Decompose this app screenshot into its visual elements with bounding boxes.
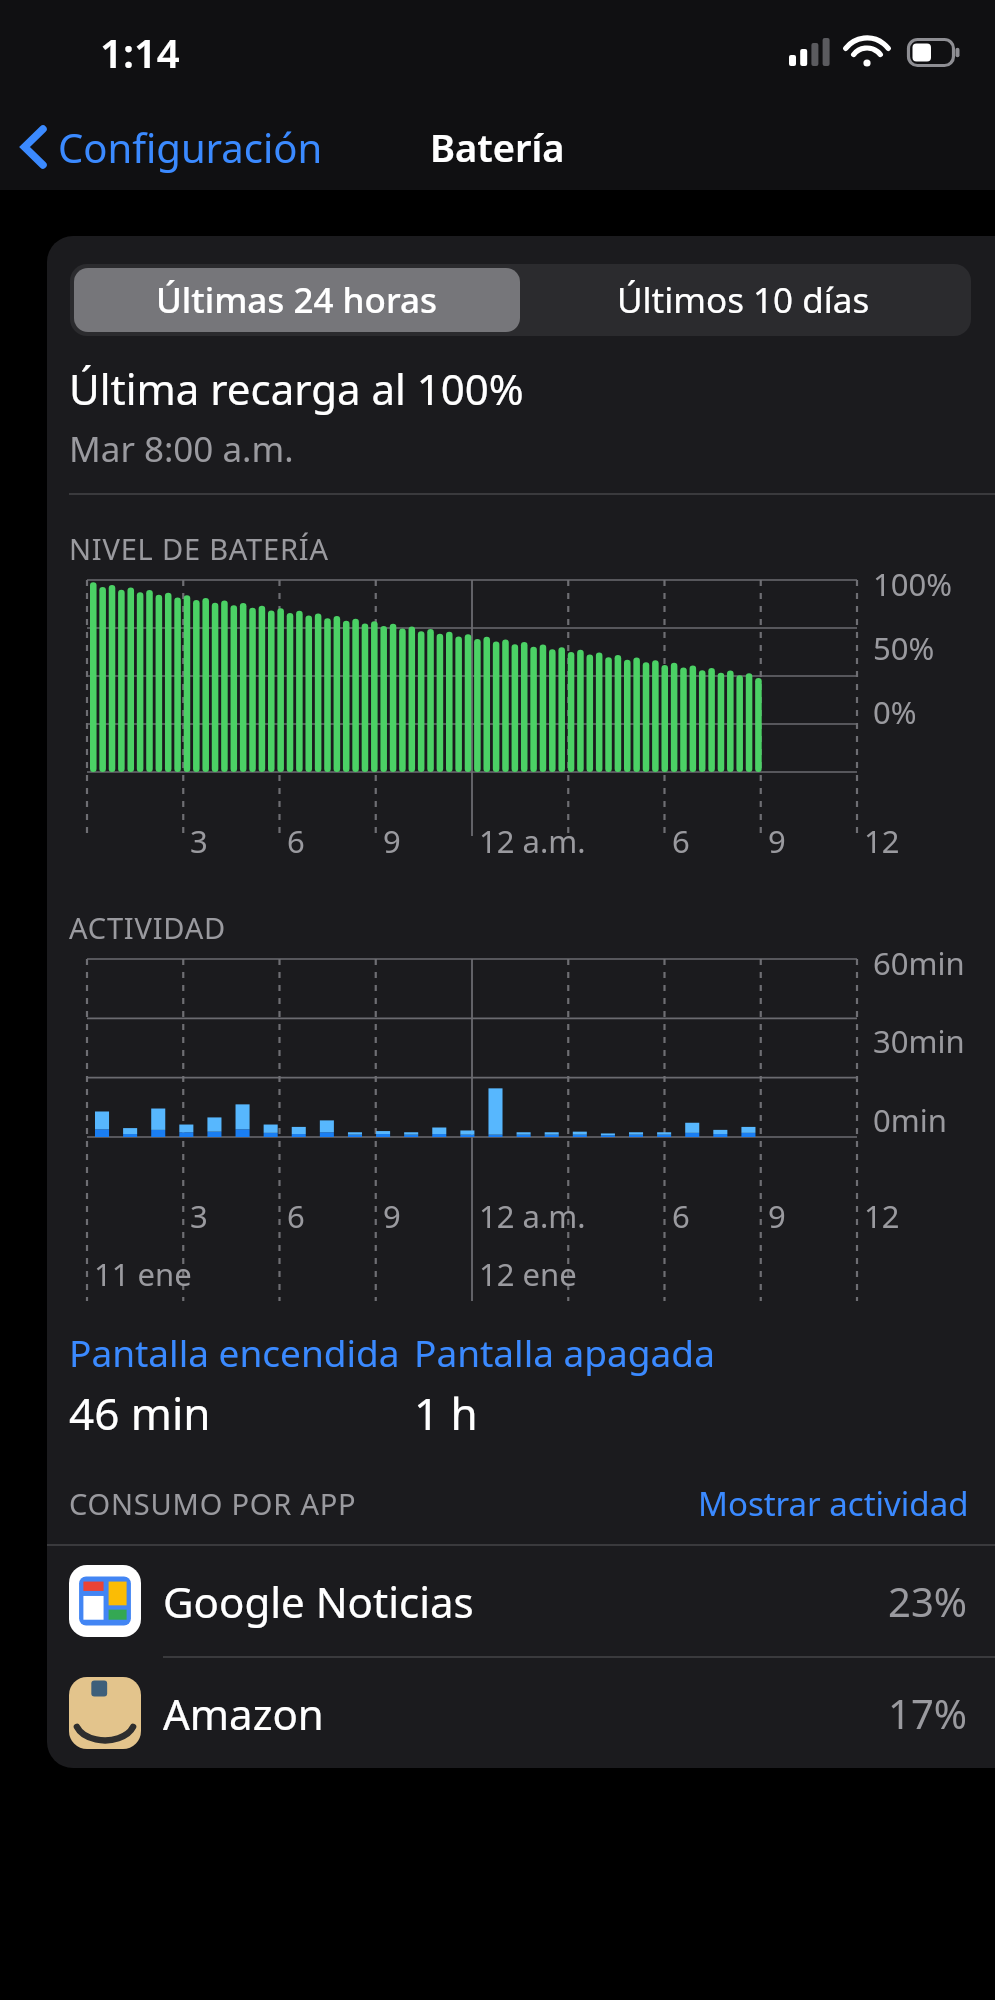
staticText: 0% (873, 691, 917, 733)
staticText: 60min (873, 942, 965, 984)
button[interactable]: Últimos 10 días (520, 268, 967, 332)
staticText: 9 (383, 1195, 401, 1237)
staticText: 9 (768, 820, 786, 862)
other: Amazon (69, 1677, 141, 1749)
staticText: Amazon (163, 1685, 324, 1742)
staticText: Pantalla apagada (414, 1327, 715, 1377)
staticText: 12 (864, 820, 900, 862)
button[interactable]: Últimas 24 horas (74, 268, 520, 332)
staticText: NIVEL DE BATERÍA (69, 529, 329, 568)
staticText: 100% (873, 563, 952, 605)
staticText: 50% (873, 627, 935, 669)
button[interactable]: Mostrar actividad (698, 1481, 969, 1526)
staticText: 30min (873, 1020, 965, 1062)
staticText: 9 (768, 1195, 786, 1237)
button[interactable]: Amazon (47, 1658, 995, 1768)
staticText: Mar 8:00 a.m. (69, 425, 294, 473)
staticText: Última recarga al 100% (69, 360, 524, 417)
staticText: 12 a.m. (479, 820, 586, 862)
staticText: 1:14 (100, 25, 180, 79)
staticText: 0min (873, 1099, 947, 1141)
staticText: 1 h (414, 1383, 478, 1443)
button[interactable]: Pantalla encendida (69, 1327, 414, 1443)
staticText: 12 (864, 1195, 900, 1237)
button[interactable]: Configuración (12, 112, 331, 182)
staticText: Últimas 24 horas (156, 276, 438, 324)
staticText: CONSUMO POR APP (69, 1484, 357, 1523)
staticText: Mostrar actividad (698, 1481, 969, 1526)
staticText: 46 min (69, 1383, 211, 1443)
staticText: Últimos 10 días (617, 276, 870, 324)
staticText: 12 a.m. (479, 1195, 586, 1237)
staticText: 12 ene (479, 1253, 577, 1295)
staticText: Configuración (58, 120, 323, 174)
staticText: 23% (888, 1574, 967, 1628)
staticText: ACTIVIDAD (69, 908, 226, 947)
staticText: 3 (190, 820, 208, 862)
button[interactable]: Pantalla apagada (414, 1327, 715, 1443)
staticText: Google Noticias (163, 1573, 474, 1630)
other: Google Noticias (69, 1565, 141, 1637)
staticText: Pantalla encendida (69, 1327, 400, 1377)
staticText: 6 (672, 1195, 690, 1237)
staticText: 6 (287, 1195, 305, 1237)
staticText: 3 (190, 1195, 208, 1237)
staticText: 17% (888, 1686, 967, 1740)
staticText: 9 (383, 820, 401, 862)
staticText: Batería (430, 121, 565, 173)
staticText: 6 (672, 820, 690, 862)
staticText: 11 ene (94, 1253, 192, 1295)
staticText: 6 (287, 820, 305, 862)
button[interactable]: Google Noticias (47, 1546, 995, 1656)
